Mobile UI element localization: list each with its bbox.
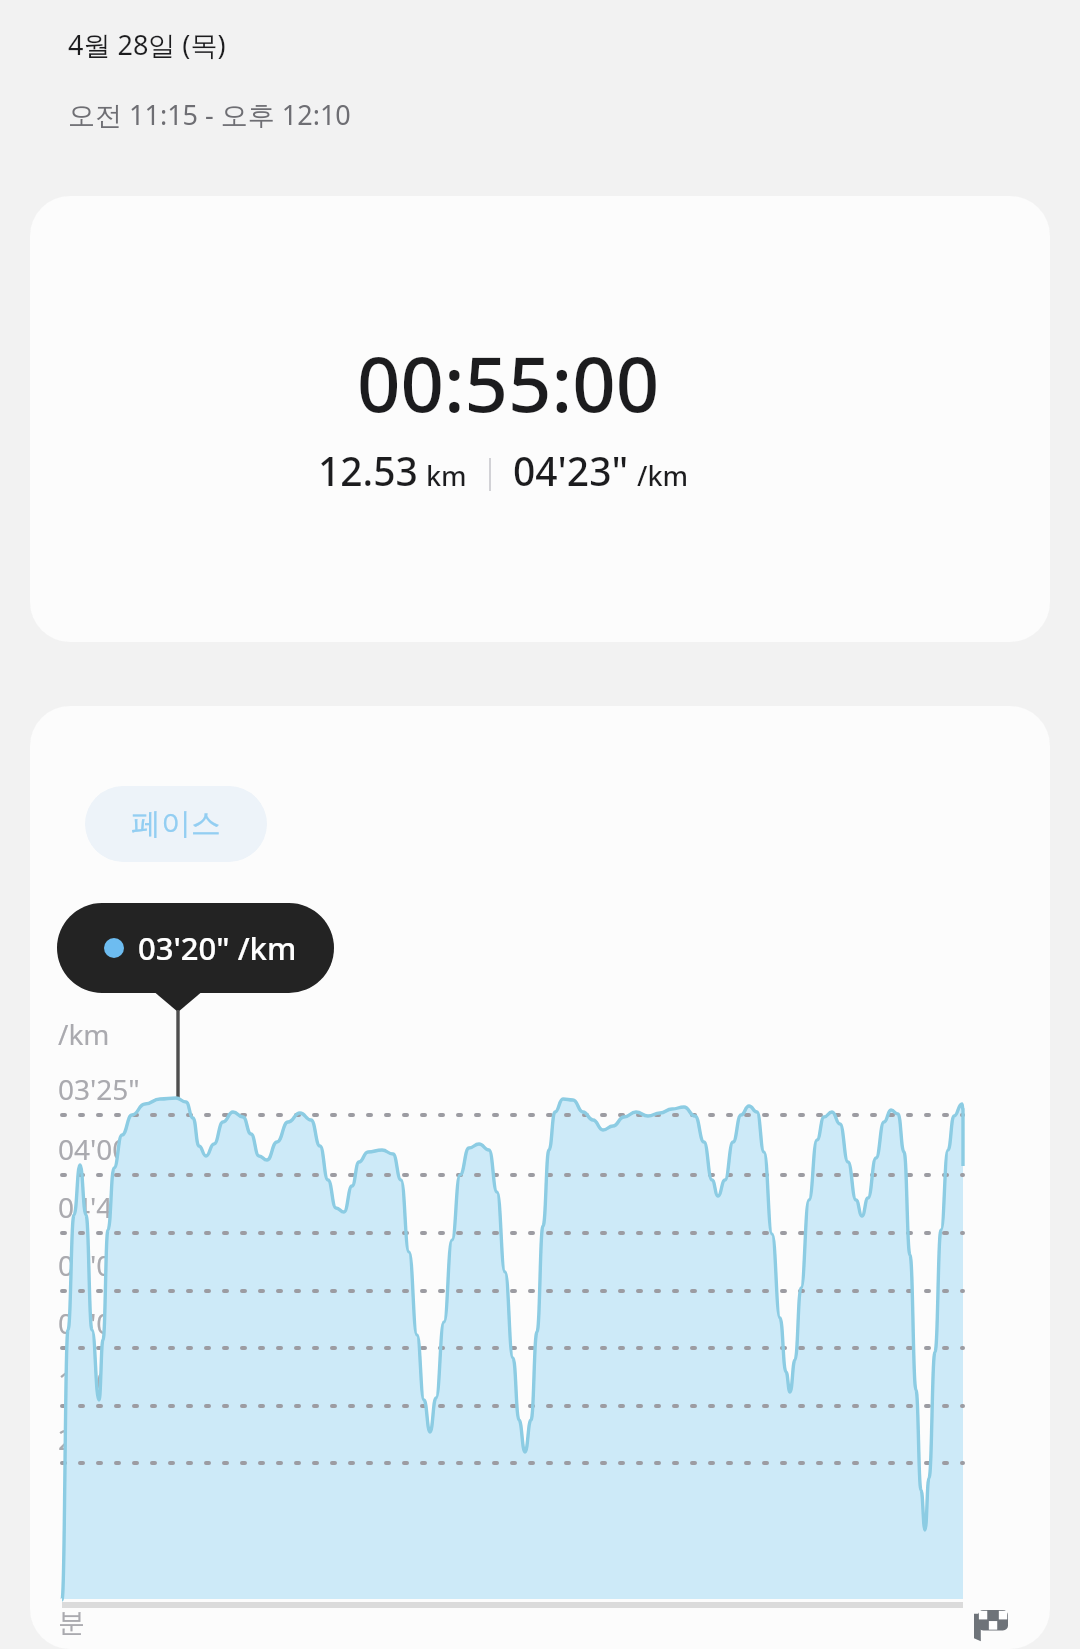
- staticText: 00:55:00: [357, 331, 660, 435]
- staticText: 03'20" /km: [138, 927, 297, 969]
- staticText: 12'00": [58, 1362, 140, 1400]
- staticText: 04'48": [58, 1188, 140, 1226]
- button[interactable]: Finish: [958, 1594, 1014, 1649]
- staticText: /km: [637, 457, 689, 494]
- staticText: 4월 28일 (목): [68, 26, 226, 63]
- staticText: 04'23": [513, 444, 629, 497]
- staticText: km: [426, 457, 467, 494]
- staticText: /km: [58, 1015, 110, 1053]
- button[interactable]: 페이스: [85, 786, 267, 862]
- staticText: 03'25": [58, 1070, 140, 1108]
- staticText: 06'00": [58, 1246, 140, 1284]
- staticText: 분: [58, 1606, 85, 1640]
- staticText: 오전 11:15 - 오후 12:10: [68, 96, 351, 133]
- staticText: 08'00": [58, 1304, 140, 1342]
- staticText: 24'00": [58, 1420, 140, 1458]
- staticText: 12.53: [318, 444, 418, 497]
- button[interactable]: 03'20" /km: [57, 903, 334, 993]
- staticText: 페이스: [131, 805, 221, 843]
- staticText: 04'00": [58, 1130, 140, 1168]
- button[interactable]: 00:55:00: [30, 196, 1050, 642]
